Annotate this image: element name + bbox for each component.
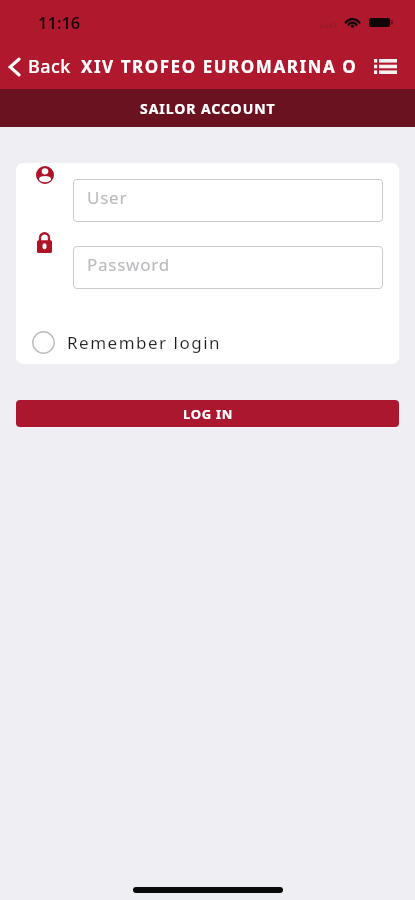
button[interactable]: Menu [360, 49, 415, 84]
button[interactable]: Back [0, 54, 77, 79]
staticText: SAILOR ACCOUNT [140, 99, 276, 118]
staticText: XIV TROFEO EUROMARINA O [81, 55, 358, 78]
button[interactable]: Remember login [16, 320, 399, 364]
button[interactable]: LOG IN [16, 400, 399, 427]
button[interactable]: User [73, 179, 383, 222]
staticText: Password [87, 253, 170, 276]
button[interactable]: Password [73, 246, 383, 289]
staticText: Back [28, 54, 71, 79]
staticText: LOG IN [183, 405, 233, 423]
staticText: User [87, 186, 128, 209]
staticText: 11:16 [38, 11, 81, 33]
staticText: Remember login [67, 331, 222, 354]
